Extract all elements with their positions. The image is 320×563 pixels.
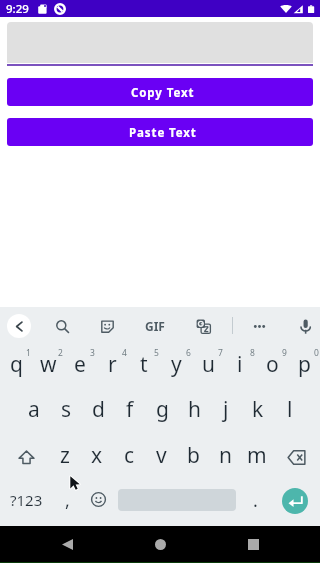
staticText: 4: [122, 347, 127, 357]
staticText: y: [171, 350, 182, 379]
button[interactable]: ,: [55, 480, 79, 520]
button[interactable]: More options: [248, 315, 270, 337]
button[interactable]: m: [241, 434, 273, 479]
button[interactable]: v: [145, 434, 177, 479]
staticText: z: [60, 441, 70, 470]
staticText: b: [187, 441, 200, 470]
button[interactable]: Copy Text: [7, 78, 313, 106]
button[interactable]: f: [114, 389, 146, 434]
button[interactable]: Voice input: [294, 315, 316, 337]
staticText: k: [252, 395, 264, 424]
button[interactable]: s: [50, 389, 82, 434]
staticText: i: [237, 350, 243, 379]
button[interactable]: Paste Text: [7, 118, 313, 146]
button[interactable]: y: [160, 344, 192, 389]
staticText: p: [298, 350, 311, 379]
button[interactable]: Shift: [15, 446, 37, 468]
staticText: h: [188, 395, 201, 424]
staticText: m: [247, 441, 267, 470]
button[interactable]: GIF: [143, 315, 167, 337]
staticText: w: [40, 350, 57, 379]
staticText: r: [108, 350, 117, 379]
staticText: e: [74, 350, 86, 379]
button[interactable]: .: [244, 480, 266, 520]
staticText: u: [202, 350, 215, 379]
staticText: GIF: [145, 318, 165, 334]
staticText: .: [253, 488, 258, 513]
button[interactable]: n: [209, 434, 241, 479]
button[interactable]: h: [178, 389, 210, 434]
staticText: 1: [26, 347, 31, 357]
button[interactable]: x: [81, 434, 113, 479]
button[interactable]: Recent apps: [238, 529, 268, 559]
staticText: Paste Text: [129, 125, 197, 141]
staticText: v: [156, 441, 167, 470]
staticText: d: [92, 395, 105, 424]
staticText: 9: [282, 347, 287, 357]
button[interactable]: Back: [52, 529, 82, 559]
button[interactable]: u: [192, 344, 224, 389]
button[interactable]: Translate: [192, 315, 214, 337]
button[interactable]: Home: [145, 529, 175, 559]
staticText: 6: [186, 347, 191, 357]
button[interactable]: t: [128, 344, 160, 389]
button[interactable]: e: [64, 344, 96, 389]
staticText: s: [61, 395, 72, 424]
button[interactable]: Search: [51, 315, 73, 337]
staticText: 5: [154, 347, 159, 357]
button[interactable]: c: [113, 434, 145, 479]
button[interactable]: g: [146, 389, 178, 434]
staticText: c: [124, 441, 135, 470]
staticText: j: [223, 395, 229, 424]
button[interactable]: ?123: [8, 480, 44, 520]
staticText: ,: [65, 488, 70, 513]
staticText: g: [156, 395, 169, 424]
button[interactable]: p: [288, 344, 320, 389]
button[interactable]: j: [210, 389, 242, 434]
button[interactable]: z: [49, 434, 81, 479]
button[interactable]: i: [224, 344, 256, 389]
staticText: t: [140, 350, 148, 379]
staticText: n: [219, 441, 232, 470]
staticText: l: [287, 395, 293, 424]
button[interactable]: o: [256, 344, 288, 389]
staticText: Copy Text: [131, 85, 195, 101]
staticText: x: [91, 441, 103, 470]
staticText: 8: [250, 347, 255, 357]
button[interactable]: Emoji: [87, 488, 109, 510]
button[interactable]: Backspace: [284, 445, 308, 469]
button[interactable]: q: [0, 344, 32, 389]
staticText: a: [28, 395, 40, 424]
button[interactable]: Stickers: [96, 315, 118, 337]
staticText: 9:29: [6, 1, 29, 17]
button[interactable]: b: [177, 434, 209, 479]
staticText: 0: [314, 347, 319, 357]
button[interactable]: Close keyboard toolbar: [7, 314, 31, 338]
staticText: q: [10, 350, 23, 379]
staticText: 3: [90, 347, 95, 357]
staticText: o: [266, 350, 279, 379]
button[interactable]: l: [274, 389, 306, 434]
button[interactable]: k: [242, 389, 274, 434]
staticText: f: [126, 395, 134, 424]
staticText: 7: [218, 347, 223, 357]
button[interactable]: a: [18, 389, 50, 434]
button[interactable]: d: [82, 389, 114, 434]
staticText: 2: [58, 347, 63, 357]
staticText: ?123: [10, 490, 43, 510]
button[interactable]: Enter: [282, 488, 308, 514]
button[interactable]: r: [96, 344, 128, 389]
button[interactable]: w: [32, 344, 64, 389]
